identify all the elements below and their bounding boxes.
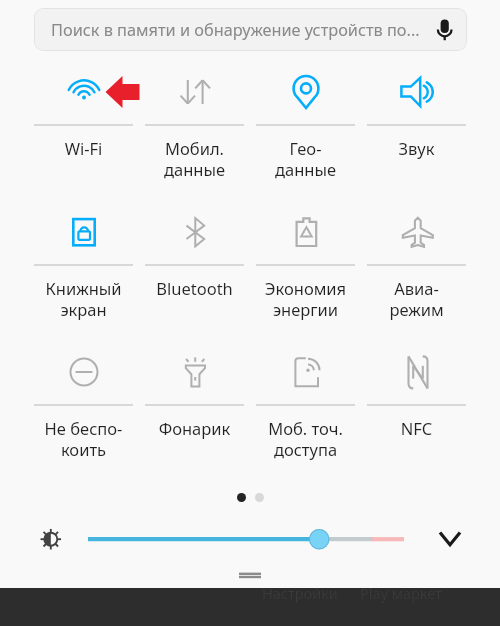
staticText: Авиа- режим — [361, 277, 472, 321]
button[interactable]: Auto brightness — [0, 517, 70, 561]
staticText: Фонарик — [139, 417, 250, 439]
staticText: Мобил. данные — [139, 137, 250, 181]
button[interactable]: Фонарик — [139, 340, 250, 480]
staticText: Настройки — [262, 583, 338, 603]
button[interactable]: Книжный экран — [28, 200, 139, 340]
staticText: Не беспо- коить — [28, 417, 139, 461]
button[interactable]: Авиа- режим — [361, 200, 472, 340]
staticText: Поиск в памяти и обнаружение устройств п… — [51, 19, 421, 41]
button[interactable]: Не беспо- коить — [28, 340, 139, 480]
staticText: Wi-Fi — [28, 137, 139, 159]
button[interactable]: Voice search — [421, 8, 467, 51]
button[interactable]: NFC — [361, 340, 472, 480]
staticText: Экономия энергии — [250, 277, 361, 321]
staticText: Книжный экран — [28, 277, 139, 321]
button[interactable]: Поиск в памяти и обнаружение устройств п… — [34, 8, 467, 51]
button[interactable] — [0, 480, 500, 514]
staticText: Звук — [361, 137, 472, 159]
button[interactable]: Expand — [425, 517, 475, 561]
staticText: Bluetooth — [139, 277, 250, 299]
staticText: Play маркет — [360, 583, 442, 603]
staticText: Гео- данные — [250, 137, 361, 181]
button[interactable]: Мобил. данные — [139, 60, 250, 200]
button[interactable]: Моб. точ. доступа — [250, 340, 361, 480]
button[interactable] — [80, 517, 250, 561]
staticText: NFC — [361, 417, 472, 439]
button[interactable]: Wi-Fi — [28, 60, 139, 200]
button[interactable]: Гео- данные — [250, 60, 361, 200]
staticText: Моб. точ. доступа — [250, 417, 361, 461]
button[interactable]: Экономия энергии — [250, 200, 361, 340]
button[interactable]: Bluetooth — [139, 200, 250, 340]
button[interactable] — [0, 566, 500, 588]
button[interactable]: Звук — [361, 60, 472, 200]
